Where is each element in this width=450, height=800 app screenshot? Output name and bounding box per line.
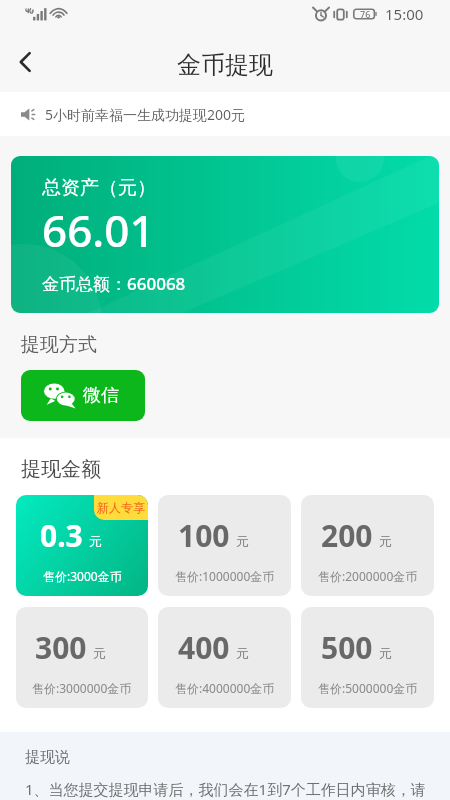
button[interactable]: 微信: [21, 370, 145, 421]
staticText: 金币总额：660068: [42, 272, 186, 295]
staticText: 总资产（元）: [42, 176, 156, 200]
staticText: 提现说: [25, 748, 70, 767]
button[interactable]: Back: [0, 34, 52, 86]
staticText: 金币提现: [177, 50, 273, 80]
staticText: 500: [321, 627, 373, 668]
staticText: 售价:3000金币: [43, 568, 122, 584]
staticText: 66.01: [42, 200, 155, 260]
staticText: 100: [178, 515, 230, 556]
staticText: 5小时前幸福一生成功提现200元: [45, 105, 246, 124]
staticText: 售价:2000000金币: [318, 568, 418, 584]
button[interactable]: 400: [158, 607, 291, 708]
staticText: 售价:1000000金币: [175, 568, 275, 584]
staticText: 售价:4000000金币: [175, 680, 275, 696]
staticText: 售价:5000000金币: [318, 680, 418, 696]
button[interactable]: 500: [301, 607, 434, 708]
button[interactable]: 300: [16, 607, 148, 708]
staticText: 400: [178, 627, 230, 668]
button[interactable]: 0.3: [16, 495, 148, 596]
staticText: 元: [236, 645, 249, 661]
staticText: 新人专享: [97, 500, 145, 515]
staticText: 提现方式: [21, 333, 97, 357]
staticText: 0.3: [40, 515, 83, 556]
button[interactable]: 100: [158, 495, 291, 596]
staticText: 200: [321, 515, 373, 556]
staticText: 元: [379, 645, 392, 661]
staticText: 售价:3000000金币: [32, 680, 132, 696]
staticText: 元: [236, 533, 249, 549]
staticText: 元: [379, 533, 392, 549]
staticText: 300: [35, 627, 87, 668]
staticText: 微信: [83, 384, 119, 407]
button[interactable]: 200: [301, 495, 434, 596]
staticText: 1、当您提交提现申请后，我们会在1到7个工作日内审核，请: [25, 779, 426, 799]
staticText: 元: [89, 533, 102, 549]
staticText: 76: [360, 8, 371, 20]
staticText: 提现金额: [21, 457, 101, 482]
staticText: 15:00: [385, 4, 424, 24]
staticText: 元: [93, 645, 106, 661]
button[interactable]: 总资产（元）: [11, 156, 439, 313]
button[interactable]: 5小时前幸福一生成功提现200元: [0, 92, 450, 136]
